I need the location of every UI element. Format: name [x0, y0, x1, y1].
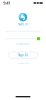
- button[interactable]: [5, 31, 41, 36]
- staticText: Sign in: [18, 22, 28, 26]
- staticText: 9:41: [3, 0, 10, 6]
- button[interactable]: Create account: [0, 62, 46, 64]
- button[interactable]: [5, 24, 41, 29]
- button[interactable]: Sign In: [8, 52, 38, 58]
- button[interactable]: Forgot password?: [0, 43, 46, 45]
- staticText: Forgot password?: [16, 43, 30, 45]
- staticText: Create account: [17, 62, 28, 64]
- staticText: Sign In: [18, 53, 28, 57]
